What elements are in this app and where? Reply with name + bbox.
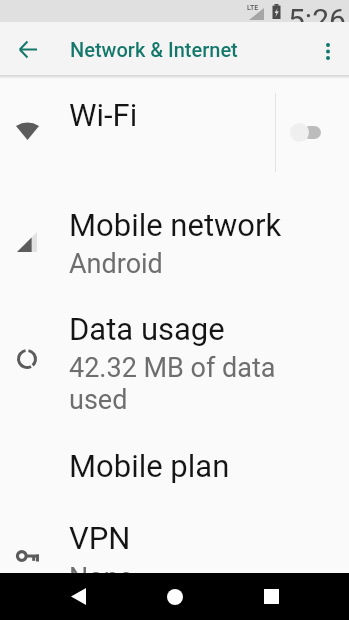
staticText: 5:26 bbox=[288, 2, 346, 24]
button[interactable]: Mobile network bbox=[0, 184, 349, 280]
button[interactable]: Data usage bbox=[0, 289, 349, 414]
button[interactable]: Recent apps bbox=[236, 573, 306, 620]
staticText: Mobile network bbox=[69, 207, 282, 243]
staticText: Data usage bbox=[69, 311, 225, 347]
staticText: Wi-Fi bbox=[69, 97, 138, 133]
button[interactable]: Home bbox=[140, 573, 210, 620]
button[interactable]: VPN bbox=[0, 498, 349, 578]
staticText: 42.32 MB of data used bbox=[69, 352, 284, 416]
staticText: None bbox=[69, 562, 133, 594]
staticText: LTE bbox=[247, 4, 259, 12]
staticText: Android bbox=[69, 248, 163, 280]
button[interactable]: Navigate up bbox=[3, 24, 53, 75]
staticText: Mobile plan bbox=[69, 448, 230, 484]
staticText: Network & Internet bbox=[70, 38, 238, 61]
button[interactable]: Back bbox=[43, 573, 113, 620]
button[interactable]: Wi-Fi toggle bbox=[283, 117, 329, 157]
staticText: VPN bbox=[69, 520, 131, 556]
button[interactable]: More options bbox=[304, 26, 349, 77]
button[interactable]: Mobile plan bbox=[0, 425, 349, 493]
button[interactable]: Wi-Fi bbox=[0, 76, 349, 178]
